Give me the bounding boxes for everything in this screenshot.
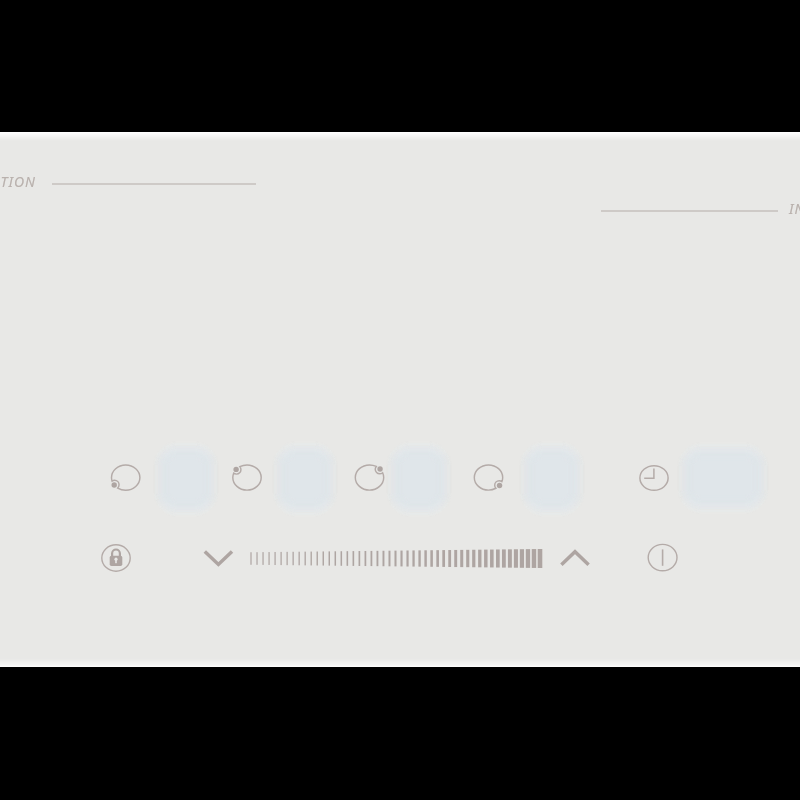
button[interactable]: Cooking zone 1 [106,458,146,498]
staticText: INDESIT [789,199,800,218]
button[interactable]: Cooking zone 2 [228,458,268,498]
button[interactable]: Cooking zone 3 [352,458,392,498]
staticText: INDUCTION [0,172,37,191]
button[interactable]: Decrease power level [200,539,238,577]
button[interactable]: Power level slider [248,540,544,576]
button[interactable]: Key lock [98,538,138,578]
button[interactable]: Cooking zone 4 [468,459,508,499]
button[interactable]: Timer [634,457,674,497]
button[interactable]: Increase power level [556,539,594,577]
button[interactable]: Power [643,538,683,578]
